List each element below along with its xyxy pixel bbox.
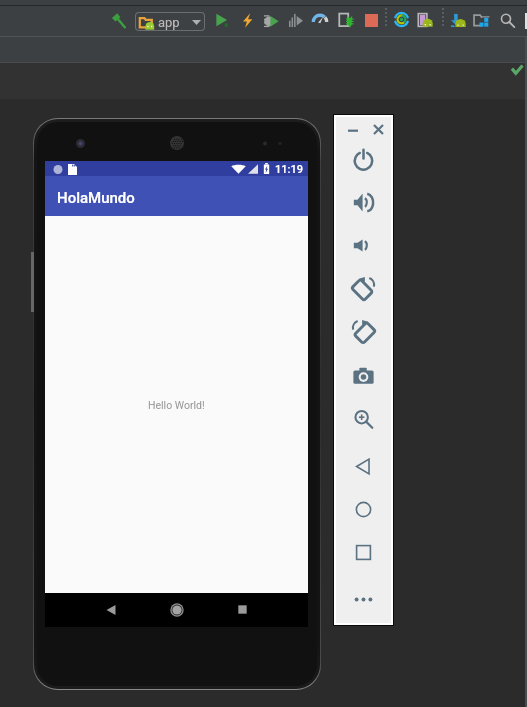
button[interactable]: SDK Manager <box>450 12 466 28</box>
button[interactable]: Minimize <box>346 123 360 137</box>
button[interactable]: More <box>352 588 375 611</box>
button[interactable]: Close <box>372 123 385 136</box>
button[interactable]: Apply Changes <box>240 13 255 28</box>
button[interactable]: Overview <box>352 541 375 564</box>
button[interactable]: Profile <box>289 13 303 27</box>
staticText: app <box>158 15 180 30</box>
button[interactable]: Build <box>111 13 126 28</box>
button[interactable]: Recents <box>237 604 248 615</box>
button[interactable]: Screenshot <box>352 364 375 387</box>
button[interactable]: Project Structure <box>473 12 490 29</box>
button[interactable]: Power <box>352 148 375 171</box>
button[interactable]: Zoom <box>352 408 375 431</box>
button[interactable]: AVD Manager <box>417 12 433 28</box>
button[interactable]: Volume Up <box>352 191 375 214</box>
staticText: 11:19 <box>275 163 303 176</box>
button[interactable]: Profiler <box>312 12 328 28</box>
staticText: Hello World! <box>148 399 205 411</box>
staticText: HolaMundo <box>57 189 135 207</box>
button[interactable]: Rotate Left <box>352 277 375 300</box>
button[interactable]: Home <box>170 603 184 617</box>
button[interactable]: Rotate Right <box>352 320 375 343</box>
button[interactable]: Debug <box>263 13 279 29</box>
button[interactable]: Sync Project <box>394 12 409 27</box>
button[interactable]: Run <box>215 13 229 27</box>
button[interactable]: Back <box>104 603 118 617</box>
button[interactable]: Attach Debugger <box>338 12 354 28</box>
button[interactable]: Volume Down <box>352 234 375 257</box>
button[interactable]: Home <box>352 498 375 521</box>
button[interactable]: Search <box>500 13 515 28</box>
button[interactable]: app <box>136 13 204 30</box>
button[interactable]: Back <box>352 455 375 478</box>
